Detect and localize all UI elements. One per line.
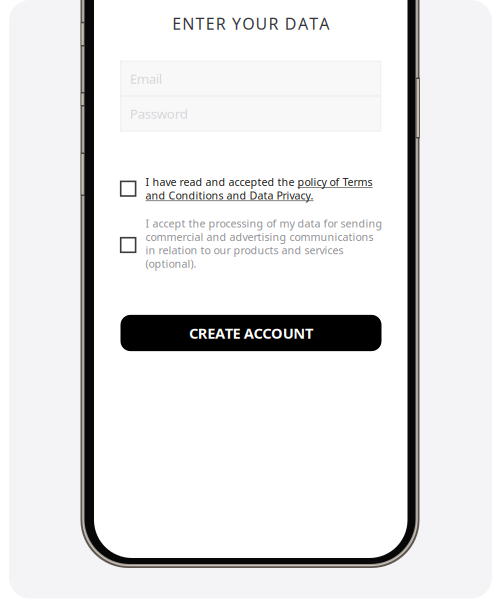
staticText: T [305,323,313,343]
staticText: C [189,323,198,343]
button[interactable]: I accept the processing of my data for s… [121,216,383,271]
staticText: D [285,13,297,34]
staticText: Password [130,105,188,122]
staticText: T [225,323,233,343]
staticText: Y [232,13,241,34]
staticText: C [262,323,271,343]
staticText: E [232,323,240,343]
staticText: R [216,13,226,34]
staticText: O [242,13,254,34]
staticText: T [195,13,204,34]
staticText: A [244,323,254,343]
staticText: E [172,13,181,34]
staticText: I accept the processing of my data for s… [146,216,383,271]
button[interactable]: I have read and accepted the policy of T… [121,175,383,202]
staticText [240,323,244,343]
staticText: T [309,13,318,34]
staticText: E [206,13,215,34]
staticText: E [207,323,215,343]
staticText: A [319,13,329,34]
staticText: R [269,13,279,34]
staticText: N [182,13,194,34]
staticText: U [255,13,267,34]
staticText: A [215,323,225,343]
staticText: O [271,323,283,343]
staticText: A [298,13,308,34]
staticText: C [254,323,263,343]
staticText: R [198,323,208,343]
staticText: U [283,323,294,343]
staticText: Email [130,70,162,87]
staticText: I have read and accepted the policy of T… [146,175,373,202]
staticText: N [293,323,305,343]
button[interactable]: C [120,315,381,351]
